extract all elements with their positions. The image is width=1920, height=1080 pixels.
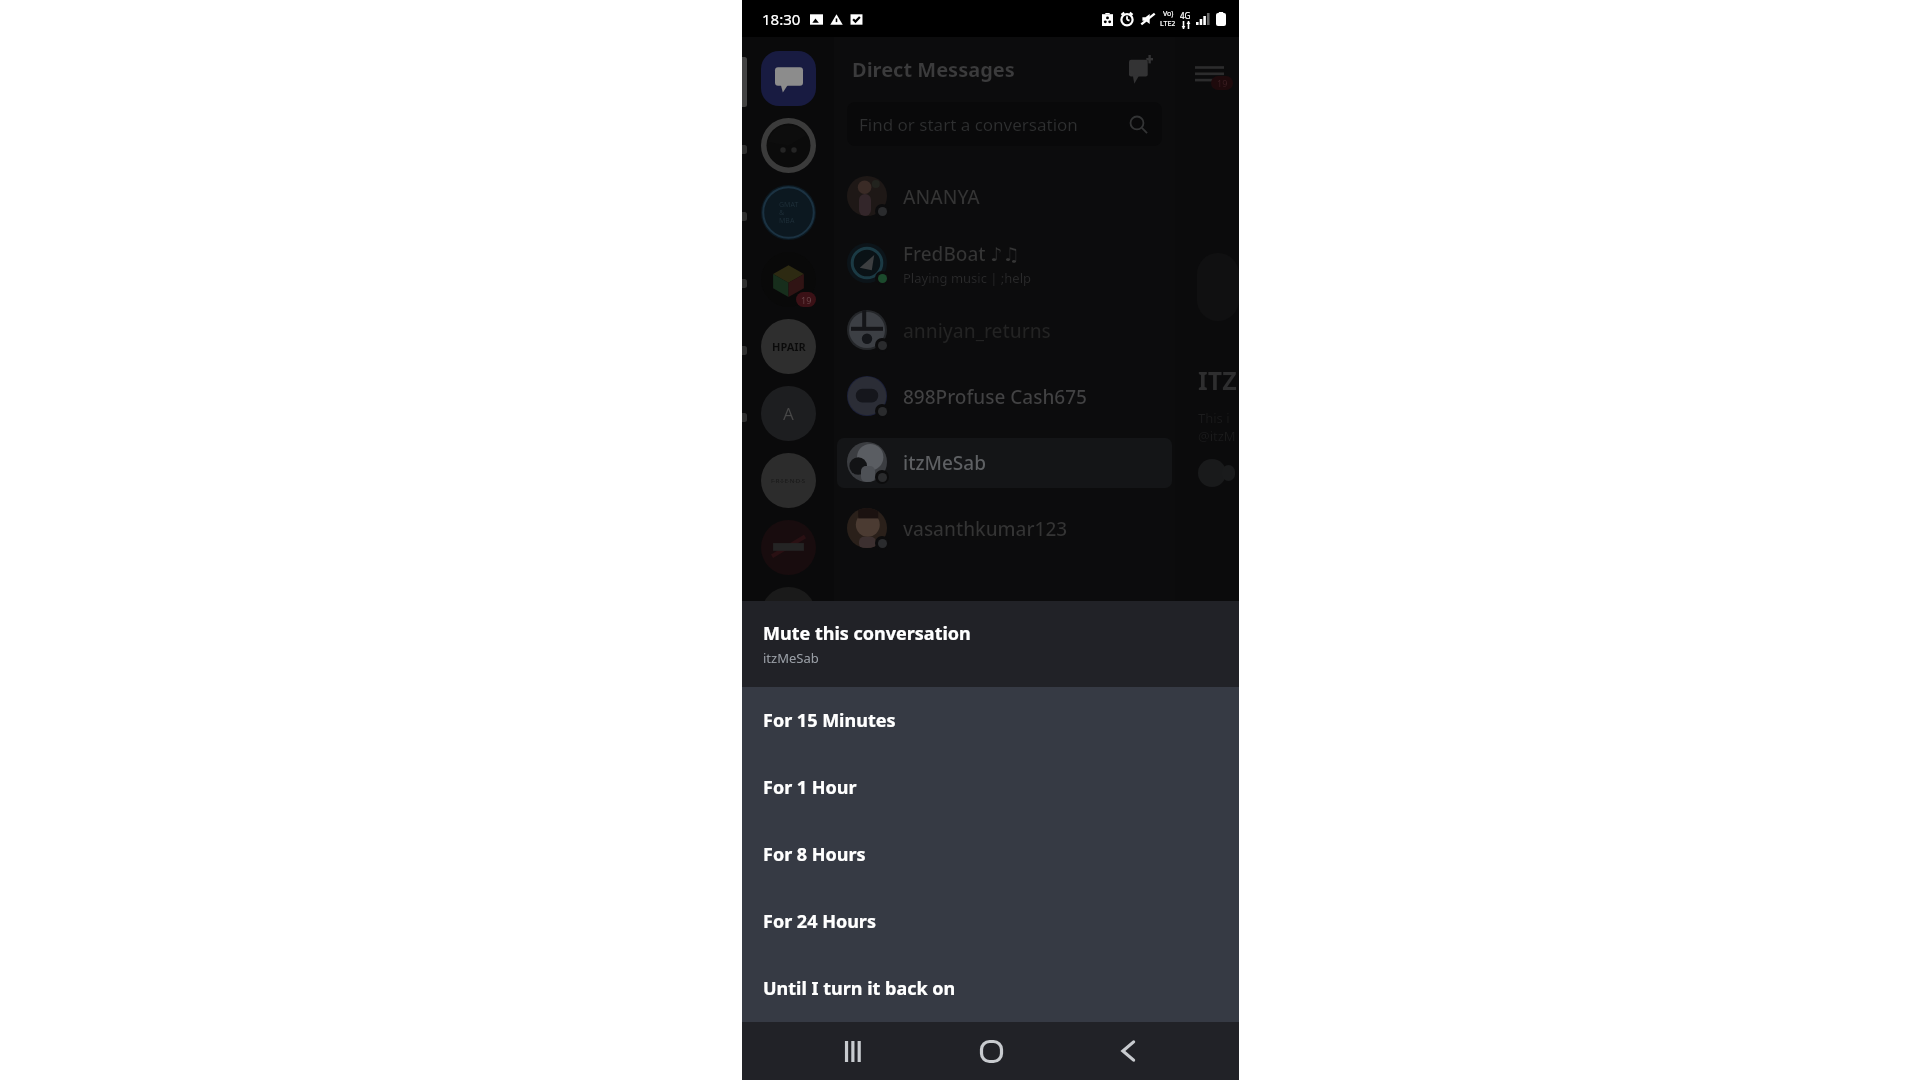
staticText: A — [783, 402, 794, 425]
button[interactable]: Server 1 — [761, 118, 816, 173]
button[interactable]: ANANYA — [834, 164, 1175, 230]
staticText: Until I turn it back on — [763, 976, 956, 1001]
button[interactable]: Direct Messages home — [761, 51, 816, 106]
staticText: GMAT & MBA — [779, 200, 799, 225]
staticText: itzMeSab — [903, 450, 986, 476]
staticText: 19 — [1217, 77, 1228, 89]
staticText: For 1 Hour — [763, 775, 857, 800]
staticText: 898Profuse Cash675 — [903, 384, 1087, 410]
button[interactable]: Back — [1102, 1025, 1154, 1077]
staticText: For 24 Hours — [763, 909, 876, 934]
staticText: F·R·I·E·N·D·S — [771, 477, 806, 485]
staticText: This i — [1198, 409, 1230, 427]
button[interactable]: Until I turn it back on — [742, 955, 1239, 1022]
button[interactable]: For 1 Hour — [742, 754, 1239, 821]
staticText: itzMeSab — [763, 649, 819, 667]
staticText: Find or start a conversation — [859, 113, 1078, 136]
button[interactable]: Server 5 — [761, 386, 816, 441]
button[interactable]: vasanthkumar123 — [834, 496, 1175, 562]
button[interactable]: FredBoat ♪♫ — [834, 230, 1175, 298]
button[interactable]: Server 7 — [761, 520, 816, 575]
button[interactable]: 898Profuse Cash675 — [834, 364, 1175, 430]
button[interactable]: For 15 Minutes — [742, 687, 1239, 754]
button[interactable]: Add a server — [761, 587, 816, 642]
staticText: Vo) — [1163, 9, 1174, 19]
button[interactable]: anniyan_returns — [834, 298, 1175, 364]
staticText: anniyan_returns — [903, 318, 1051, 344]
button[interactable]: Server 3 — [761, 252, 816, 307]
staticText: Playing music | ;help — [903, 269, 1032, 287]
button[interactable]: Home — [965, 1025, 1017, 1077]
staticText: HPAIR — [772, 339, 806, 354]
button[interactable]: For 8 Hours — [742, 821, 1239, 888]
staticText: 4G — [1180, 10, 1191, 21]
staticText: 19 — [801, 294, 812, 306]
staticText: @itzM — [1198, 427, 1236, 445]
staticText: LTE2 — [1160, 19, 1176, 29]
staticText: Direct Messages — [852, 56, 1015, 83]
button[interactable]: Open channel menu — [1195, 66, 1224, 81]
button[interactable]: Find or start a conversation — [847, 102, 1162, 146]
button[interactable]: Recents — [827, 1025, 879, 1077]
button[interactable]: Server 2 — [761, 185, 816, 240]
button[interactable]: For 24 Hours — [742, 888, 1239, 955]
button[interactable]: Server 4 — [761, 319, 816, 374]
staticText: 18:30 — [762, 9, 801, 29]
button[interactable]: Server 6 — [761, 453, 816, 508]
button[interactable]: itzMeSab — [834, 430, 1175, 496]
staticText: For 8 Hours — [763, 842, 866, 867]
staticText: vasanthkumar123 — [903, 516, 1068, 542]
staticText: ANANYA — [903, 184, 980, 210]
staticText: For 15 Minutes — [763, 708, 896, 733]
staticText: Mute this conversation — [763, 621, 971, 646]
staticText: FredBoat ♪♫ — [903, 241, 1020, 267]
staticText: ITZ — [1198, 363, 1237, 397]
button[interactable]: New direct message — [1129, 55, 1159, 85]
